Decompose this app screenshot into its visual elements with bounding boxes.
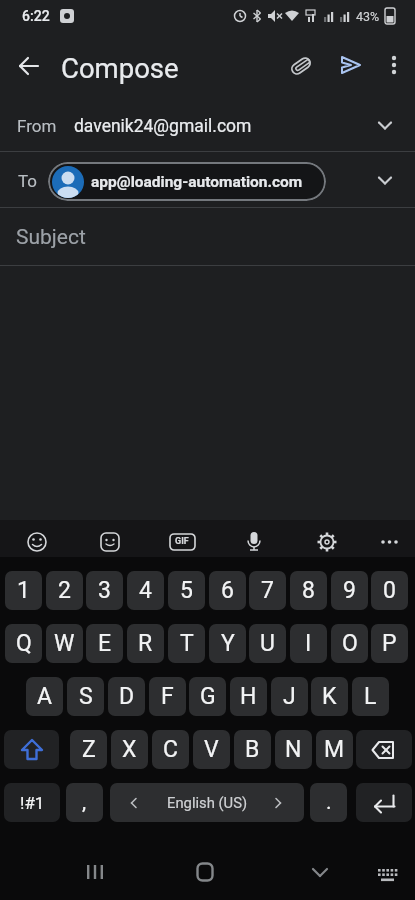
button[interactable] [331,46,371,86]
button[interactable]: T [168,624,205,663]
staticText: 6:22 [22,8,50,24]
staticText: 2 [58,577,71,604]
button[interactable]: B [234,730,271,769]
button[interactable]: Z [70,730,107,769]
button[interactable] [281,46,321,86]
button[interactable] [70,852,120,892]
staticText: T [180,630,194,657]
staticText: S [79,683,93,710]
staticText: 9 [343,577,356,604]
button[interactable]: K [311,677,348,716]
staticText: 4 [139,577,152,604]
button[interactable] [8,45,50,87]
button[interactable]: 4 [127,571,164,610]
button[interactable]: app@loading-automation.com [48,162,326,201]
button[interactable] [356,783,412,822]
button[interactable]: English (US) [110,783,304,822]
button[interactable]: H [230,677,267,716]
staticText: W [54,630,75,657]
button[interactable]: M [316,730,353,769]
staticText: D [119,683,135,710]
staticText: davenik24@gmail.com [74,116,252,137]
button[interactable]: 6 [209,571,246,610]
button[interactable]: J [271,677,308,716]
button[interactable] [356,730,412,769]
button[interactable]: X [111,730,148,769]
staticText: Compose [61,52,179,84]
staticText: M [324,736,345,763]
staticText: , [82,790,87,815]
button[interactable]: 8 [290,571,327,610]
button[interactable] [295,852,345,892]
staticText: 0 [383,577,396,604]
staticText: I [305,630,312,657]
button[interactable]: D [108,677,145,716]
staticText: Q [16,630,32,657]
button[interactable]: P [371,624,408,663]
button[interactable]: F [149,677,186,716]
button[interactable]: G [189,677,226,716]
staticText: C [163,736,178,763]
staticText: To [18,171,38,191]
button[interactable]: 7 [249,571,286,610]
button[interactable]: C [152,730,189,769]
staticText: 7 [261,577,274,604]
button[interactable]: !#1 [4,783,60,822]
staticText: From [17,116,57,136]
staticText: U [260,630,275,657]
staticText: X [122,736,137,763]
button[interactable]: 1 [5,571,42,610]
button[interactable]: V [193,730,230,769]
staticText: Z [82,736,96,763]
button[interactable]: Q [5,624,42,663]
button[interactable]: , [66,783,103,822]
button[interactable]: 3 [86,571,123,610]
button[interactable]: W [46,624,83,663]
button[interactable] [180,852,230,892]
button[interactable]: U [249,624,286,663]
button[interactable]: 0 [371,571,408,610]
staticText: K [322,683,337,710]
button[interactable]: Subject [0,208,415,265]
staticText: R [138,630,153,657]
staticText: O [342,630,358,657]
staticText: 43% [356,9,380,24]
staticText: English (US) [167,794,248,811]
staticText: 8 [302,577,315,604]
button[interactable] [368,858,408,894]
staticText: 6 [221,577,234,604]
button[interactable]: E [86,624,123,663]
button[interactable]: S [67,677,104,716]
button[interactable]: Y [209,624,246,663]
button[interactable]: I [290,624,327,663]
button[interactable] [4,730,59,769]
button[interactable]: N [275,730,312,769]
staticText: G [200,683,216,710]
button[interactable]: 9 [331,571,368,610]
button[interactable]: A [26,677,63,716]
staticText: J [283,683,296,710]
staticText: Subject [16,225,86,250]
staticText: E [98,630,112,657]
staticText: B [245,736,260,763]
button[interactable]: L [352,677,389,716]
staticText: !#1 [20,793,45,813]
staticText: N [285,736,302,763]
staticText: 1 [17,577,30,604]
button[interactable]: . [310,783,347,822]
staticText: V [204,736,219,763]
button[interactable]: O [331,624,368,663]
button[interactable]: To [0,152,415,207]
button[interactable] [375,46,413,84]
button[interactable]: R [127,624,164,663]
button[interactable]: From [0,99,415,151]
button[interactable]: 2 [46,571,83,610]
staticText: H [240,683,257,710]
staticText: 5 [180,577,193,604]
staticText: F [161,683,174,710]
staticText: A [37,683,53,710]
staticText: L [364,683,377,710]
button[interactable]: 5 [168,571,205,610]
staticText: P [382,630,397,657]
